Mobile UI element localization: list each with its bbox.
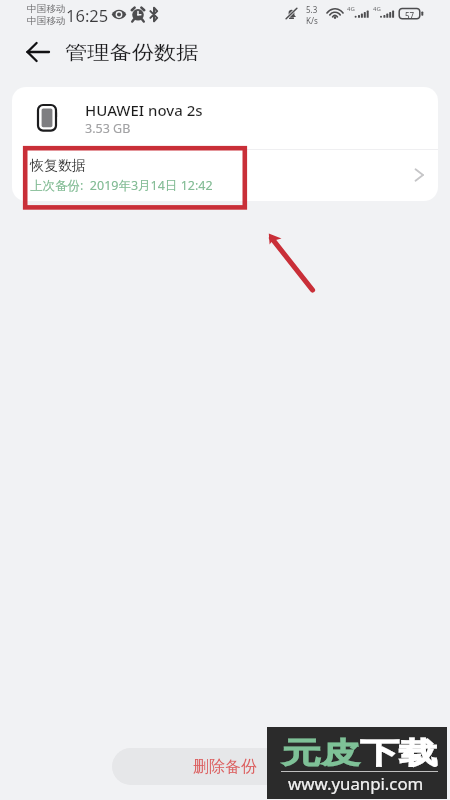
button[interactable]: HUAWEI nova 2s xyxy=(12,87,438,149)
staticText: 57 xyxy=(405,10,415,21)
staticText: 管理备份数据 xyxy=(65,41,198,65)
staticText: www.yuanpi.com xyxy=(288,772,424,795)
staticText: K/s xyxy=(306,15,318,26)
staticText: HUAWEI nova 2s xyxy=(85,100,203,120)
staticText: 5.3 xyxy=(306,4,318,15)
staticText: 删除备份 xyxy=(193,757,257,777)
staticText: 3.53 GB xyxy=(85,120,131,137)
button[interactable]: Back xyxy=(16,35,50,69)
button[interactable]: 恢复数据 xyxy=(12,150,438,201)
staticText: 元皮 xyxy=(282,735,360,772)
staticText: 4G xyxy=(347,5,355,13)
staticText: 4G xyxy=(373,5,381,13)
button[interactable]: 删除备份 xyxy=(112,748,337,785)
staticText: 中国移动 xyxy=(27,3,66,15)
staticText: 恢复数据 xyxy=(30,157,86,175)
staticText: 上次备份: 2019年3月14日 12:42 xyxy=(30,177,213,194)
staticText: 下载 xyxy=(360,735,438,772)
staticText: 中国移动 xyxy=(27,15,66,27)
staticText: 16:25 xyxy=(66,4,109,26)
